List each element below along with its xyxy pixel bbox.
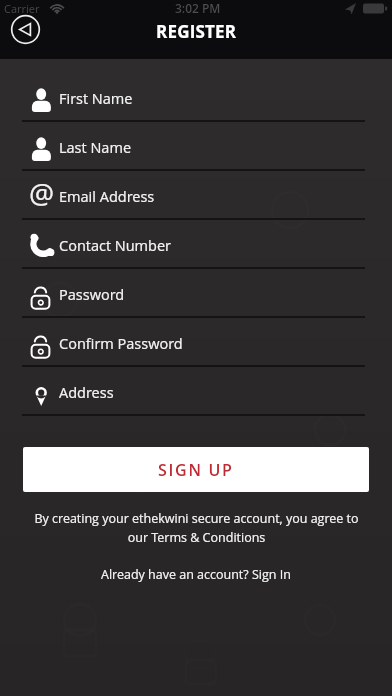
button[interactable]: Address <box>0 367 392 416</box>
button[interactable]: First Name <box>0 73 392 122</box>
button[interactable]: Already have an account? Sign In <box>101 566 291 583</box>
staticText: REGISTER <box>156 20 237 43</box>
button[interactable]: Password <box>0 269 392 318</box>
staticText: First Name <box>59 89 133 109</box>
button[interactable]: Last Name <box>0 122 392 171</box>
staticText: Password <box>59 285 125 305</box>
staticText: Address <box>59 383 114 403</box>
button[interactable]: Confirm Password <box>0 318 392 367</box>
staticText: Carrier <box>4 1 40 16</box>
staticText: @ <box>29 174 55 212</box>
staticText: Last Name <box>59 138 132 158</box>
staticText: Email Address <box>59 187 155 207</box>
button[interactable]: Contact Number <box>0 220 392 269</box>
button[interactable] <box>10 14 41 45</box>
button[interactable]: @ <box>0 171 392 220</box>
staticText: Contact Number <box>59 236 172 256</box>
staticText: Confirm Password <box>59 334 183 354</box>
staticText: By creating your ethekwini secure accoun… <box>34 510 359 546</box>
staticText: 3:02 PM <box>175 0 221 16</box>
button[interactable]: SIGN UP <box>23 447 369 492</box>
staticText: SIGN UP <box>158 459 234 481</box>
